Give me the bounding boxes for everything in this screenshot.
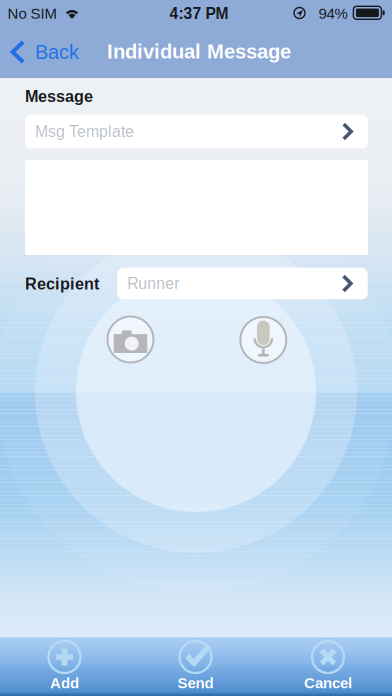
- button[interactable]: Send: [135, 637, 255, 696]
- button[interactable]: Cancel: [268, 637, 388, 696]
- button[interactable]: Record audio: [239, 316, 287, 364]
- staticText: Individual Message: [107, 40, 291, 63]
- button[interactable]: Add: [4, 637, 124, 696]
- staticText: Runner: [127, 275, 179, 292]
- staticText: Cancel: [304, 675, 352, 691]
- button[interactable]: Take photo: [106, 315, 154, 363]
- staticText: 94%: [318, 5, 347, 22]
- staticText: Recipient: [25, 275, 99, 293]
- staticText: Send: [177, 675, 213, 691]
- staticText: Msg Template: [35, 123, 134, 140]
- staticText: Add: [50, 675, 79, 691]
- button[interactable]: Runner: [117, 268, 368, 299]
- staticText: Back: [35, 41, 79, 63]
- staticText: Message: [25, 87, 93, 106]
- button[interactable]: Back: [0, 30, 89, 74]
- staticText: 4:37 PM: [169, 5, 228, 22]
- staticText: No SIM: [7, 5, 56, 22]
- button[interactable]: Msg Template: [25, 115, 368, 148]
